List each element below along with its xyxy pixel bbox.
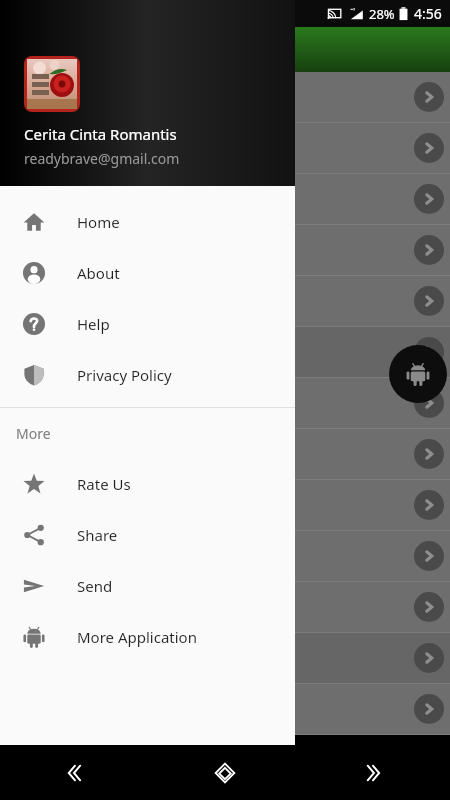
button[interactable]: Privacy Policy	[0, 349, 295, 400]
staticText: Cerita Cinta Romantis	[24, 124, 177, 144]
staticText: Privacy Policy	[77, 365, 172, 385]
button[interactable]: Help	[0, 298, 295, 349]
button[interactable]	[0, 225, 450, 275]
button[interactable]: Send	[0, 560, 295, 611]
button[interactable]: Rate Us	[0, 458, 295, 509]
button[interactable]	[0, 72, 450, 122]
button[interactable]	[0, 327, 450, 377]
button[interactable]	[0, 378, 450, 428]
button[interactable]: More Application	[389, 345, 447, 403]
staticText: Home	[77, 212, 120, 232]
staticText: More	[16, 424, 51, 443]
staticText: More Application	[77, 627, 197, 647]
button[interactable]: Cerita Cinta Romantis	[0, 0, 295, 186]
staticText: Send	[77, 576, 113, 596]
button[interactable]: Home	[0, 196, 295, 247]
button[interactable]	[0, 123, 450, 173]
button[interactable]: Back	[0, 745, 150, 800]
button[interactable]: Share	[0, 509, 295, 560]
staticText: 28%	[369, 5, 395, 23]
button[interactable]	[0, 480, 450, 530]
staticText: readybrave@gmail.com	[24, 149, 180, 168]
staticText: About	[77, 263, 120, 283]
button[interactable]: About	[0, 247, 295, 298]
button[interactable]	[0, 633, 450, 683]
staticText: Rate Us	[77, 474, 131, 494]
button[interactable]: Recents	[300, 745, 450, 800]
button[interactable]	[0, 429, 450, 479]
staticText: Cerita Cinta Romantis	[14, 38, 191, 61]
button[interactable]	[0, 582, 450, 632]
staticText: Help	[77, 314, 110, 334]
button[interactable]: More Application	[0, 611, 295, 662]
button[interactable]	[0, 174, 450, 224]
button[interactable]	[0, 684, 450, 734]
button[interactable]	[0, 276, 450, 326]
staticText: Share	[77, 525, 118, 545]
button[interactable]: Download	[338, 756, 372, 790]
button[interactable]: Home	[150, 745, 300, 800]
staticText: 4:56	[414, 4, 442, 23]
button[interactable]	[0, 531, 450, 581]
